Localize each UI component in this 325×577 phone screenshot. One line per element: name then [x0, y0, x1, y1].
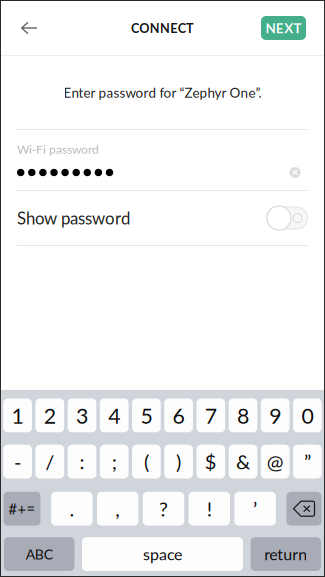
button[interactable]: ’ [234, 492, 276, 526]
staticText: ABC [26, 546, 53, 562]
button[interactable]: ? [143, 492, 184, 526]
staticText: 9 [269, 403, 281, 428]
staticText: 8 [237, 403, 249, 428]
staticText: ? [159, 497, 168, 521]
button[interactable]: 0 [293, 398, 322, 432]
staticText: Show password [17, 208, 130, 228]
button[interactable]: $ [196, 445, 225, 478]
staticText: ” [304, 450, 311, 474]
button[interactable]: ABC [4, 537, 74, 571]
staticText: / [45, 450, 54, 474]
button[interactable]: ; [100, 445, 129, 478]
staticText: 4 [108, 403, 120, 428]
button[interactable]: 9 [261, 398, 290, 432]
staticText: @ [267, 450, 284, 474]
staticText: Enter password for “Zephyr One”. [63, 84, 261, 101]
button[interactable]: return [250, 537, 321, 571]
staticText: - [14, 450, 21, 474]
button[interactable]: ! [188, 492, 230, 526]
staticText: 2 [44, 403, 56, 428]
button[interactable]: Back [0, 6, 55, 50]
button[interactable]: : [68, 445, 96, 478]
button[interactable]: 3 [68, 398, 96, 432]
button[interactable]: 5 [132, 398, 161, 432]
staticText: #+= [8, 500, 35, 517]
button[interactable]: 7 [196, 398, 225, 432]
button[interactable]: NEXT [261, 16, 306, 40]
staticText: ’ [253, 497, 257, 521]
button[interactable]: Clear password [282, 159, 308, 185]
staticText: ) [176, 450, 181, 474]
button[interactable]: & [229, 445, 257, 478]
staticText: 0 [301, 403, 313, 428]
button[interactable]: Show password [266, 203, 308, 233]
staticText: 6 [173, 403, 185, 428]
staticText: 1 [12, 403, 24, 428]
staticText: 3 [76, 403, 88, 428]
staticText: & [236, 450, 250, 474]
staticText: ! [207, 497, 212, 521]
staticText: : [79, 450, 84, 474]
button[interactable]: #+= [3, 492, 40, 526]
button[interactable]: 2 [35, 398, 64, 432]
button[interactable]: Delete [286, 492, 321, 526]
staticText: 5 [140, 403, 152, 428]
staticText: $ [205, 450, 217, 474]
button[interactable]: . [51, 492, 93, 526]
button[interactable]: 4 [100, 398, 129, 432]
staticText: return [264, 544, 307, 564]
staticText: 7 [205, 403, 217, 428]
staticText: , [115, 497, 120, 521]
button[interactable]: , [97, 492, 138, 526]
staticText: NEXT [266, 20, 301, 36]
button[interactable]: space [82, 537, 243, 571]
button[interactable]: ( [132, 445, 161, 478]
button[interactable]: ” [293, 445, 322, 478]
button[interactable]: 6 [164, 398, 193, 432]
button[interactable]: - [3, 445, 32, 478]
staticText: CONNECT [131, 20, 194, 36]
button[interactable]: @ [261, 445, 290, 478]
staticText: ( [144, 450, 149, 474]
button[interactable]: 1 [3, 398, 32, 432]
button[interactable]: ) [164, 445, 193, 478]
staticText: Wi-Fi password [17, 142, 99, 156]
button[interactable]: / [35, 445, 64, 478]
staticText: . [69, 497, 74, 521]
staticText: space [143, 544, 182, 564]
staticText: ; [112, 450, 117, 474]
button[interactable]: 8 [229, 398, 257, 432]
